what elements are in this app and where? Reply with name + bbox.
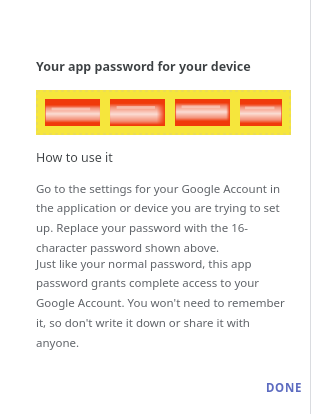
button[interactable]: DONE <box>256 374 313 402</box>
staticText: DONE <box>266 380 303 396</box>
staticText: Just like your normal password, this app… <box>36 256 291 351</box>
staticText: Your app password for your device <box>36 58 251 75</box>
staticText: Go to the settings for your Google Accou… <box>36 181 291 256</box>
button[interactable]: App password <box>36 90 291 135</box>
staticText: How to use it <box>36 149 113 166</box>
